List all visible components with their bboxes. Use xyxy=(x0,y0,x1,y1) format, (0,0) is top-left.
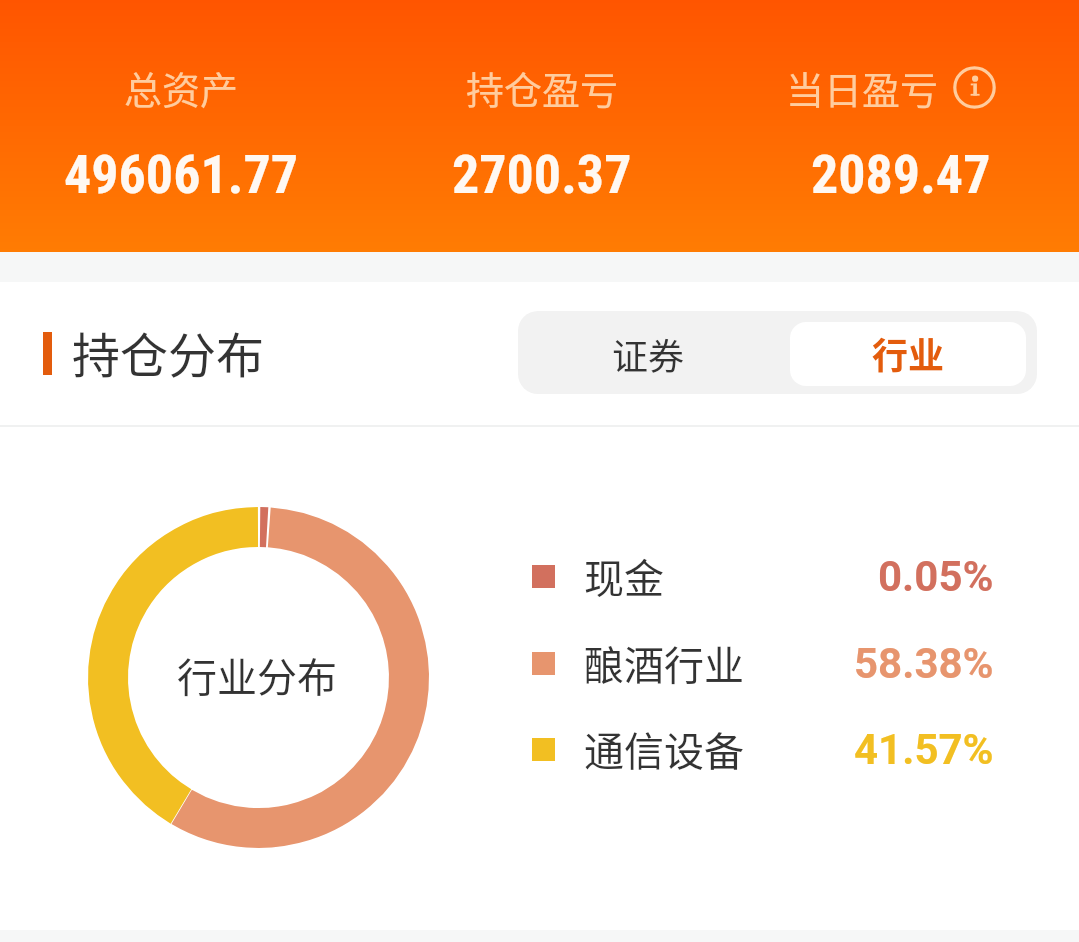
staticText: 当日盈亏 xyxy=(786,60,939,115)
button[interactable]: 当日盈亏说明 xyxy=(953,66,996,109)
button[interactable]: 总资产 xyxy=(0,0,391,252)
button[interactable]: 现金 xyxy=(500,539,1020,613)
button[interactable]: 行业 xyxy=(790,322,1026,386)
staticText: 持仓盈亏 xyxy=(466,60,619,115)
staticText: 总资产 xyxy=(124,60,239,115)
staticText: 58.38% xyxy=(854,639,994,688)
button[interactable]: 持仓盈亏 xyxy=(332,0,752,252)
button[interactable]: 通信设备 xyxy=(500,712,1020,786)
staticText: 证券 xyxy=(612,328,685,380)
staticText: 行业分布 xyxy=(177,646,337,704)
button[interactable]: 当日盈亏 xyxy=(691,0,1079,252)
staticText: 2089.47 xyxy=(811,143,991,206)
staticText: 现金 xyxy=(584,547,664,605)
staticText: 通信设备 xyxy=(584,720,744,778)
staticText: 持仓分布 xyxy=(72,317,265,387)
staticText: 2700.37 xyxy=(452,143,632,206)
button[interactable]: 酿酒行业 xyxy=(500,626,1020,700)
staticText: 行业 xyxy=(872,327,945,379)
button[interactable]: 持仓分布 xyxy=(43,311,268,394)
staticText: 酿酒行业 xyxy=(584,634,744,692)
staticText: 496061.77 xyxy=(64,143,299,206)
button[interactable]: 证券 xyxy=(518,311,790,394)
staticText: 0.05% xyxy=(878,552,994,601)
staticText: 41.57% xyxy=(854,725,994,774)
